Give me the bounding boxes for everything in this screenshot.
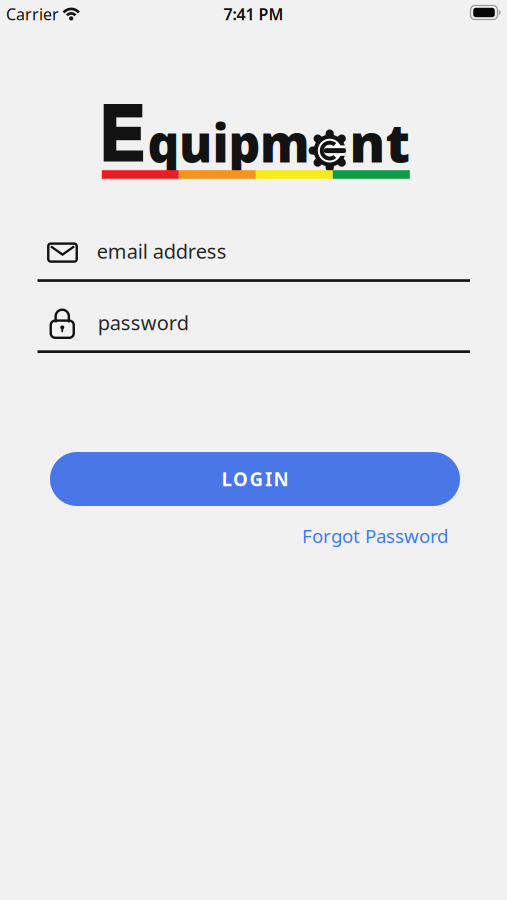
staticText: 7:41 PM [223, 3, 283, 25]
button[interactable]: email address [37, 238, 470, 284]
staticText: nt [349, 106, 410, 177]
staticText: password [98, 309, 189, 336]
button[interactable]: password [37, 308, 470, 354]
staticText: LOGIN [221, 467, 289, 491]
staticText: Carrier [6, 3, 59, 25]
button[interactable]: LOGIN [50, 452, 460, 506]
staticText: Forgot Password [302, 523, 448, 548]
staticText: email address [97, 238, 227, 264]
staticText: quipm [141, 106, 315, 177]
button[interactable]: Forgot Password [302, 523, 448, 548]
